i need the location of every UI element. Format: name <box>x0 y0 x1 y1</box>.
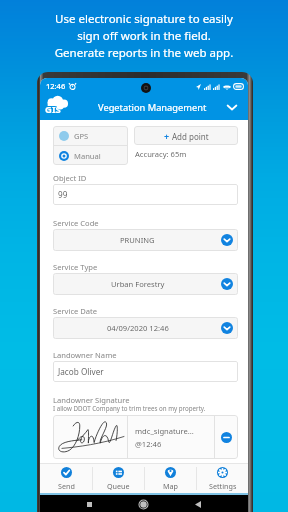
button[interactable]: Manual <box>53 146 128 165</box>
staticText: I allow DDOT Company to trim trees on my… <box>53 404 206 412</box>
staticText: GIS <box>45 103 61 116</box>
button[interactable]: + <box>134 126 238 145</box>
staticText: Landowner Name <box>53 350 117 360</box>
staticText: Queue <box>107 481 130 491</box>
staticText: mdc_signature... <box>135 426 194 436</box>
staticText: 12:46 <box>46 81 66 91</box>
button[interactable]: Queue <box>93 464 144 493</box>
staticText: Accuracy: 65m <box>135 149 187 159</box>
staticText: Service Date <box>53 306 98 316</box>
button[interactable]: Map <box>145 464 196 493</box>
staticText: Map <box>163 481 178 491</box>
staticText: Object ID <box>53 173 87 183</box>
staticText: @12:46 <box>135 439 162 449</box>
staticText: PRUNING <box>120 235 155 245</box>
button[interactable]: Jacob Oliver <box>53 361 238 382</box>
staticText: Jacob Oliver <box>58 366 104 377</box>
button[interactable]: GPS <box>53 126 128 145</box>
staticText: Send <box>58 481 75 491</box>
button[interactable]: Urban Forestry <box>53 273 238 295</box>
staticText: Vegetation Management <box>98 101 207 114</box>
button[interactable]: Remove signature <box>215 415 238 459</box>
button[interactable]: 04/09/2020 12:46 <box>53 317 238 339</box>
staticText: Landowner Signature <box>53 395 130 405</box>
button[interactable]: PRUNING <box>53 229 238 251</box>
staticText: + <box>164 130 170 142</box>
staticText: Service Code <box>53 218 99 228</box>
staticText: Settings <box>209 481 237 491</box>
staticText: 99 <box>58 189 68 200</box>
button[interactable]: Expand form list <box>225 100 239 114</box>
staticText: Service Type <box>53 262 98 272</box>
staticText: Manual <box>74 151 101 161</box>
button[interactable]: Send <box>40 464 92 493</box>
button[interactable]: Settings <box>197 464 248 493</box>
staticText: 04/09/2020 12:46 <box>107 323 169 333</box>
staticText: GPS <box>74 131 89 141</box>
staticText: Use electronic signature to easily sign … <box>0 11 288 61</box>
button[interactable]: 99 <box>53 184 238 205</box>
staticText: Urban Forestry <box>111 279 165 289</box>
staticText: Add point <box>172 131 209 142</box>
